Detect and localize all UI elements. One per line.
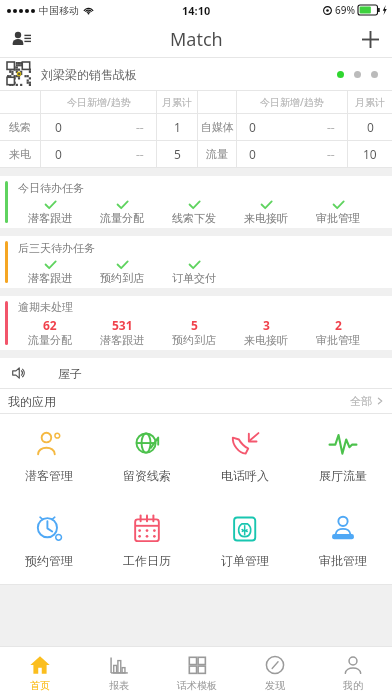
- staticText: 62: [43, 317, 57, 333]
- staticText: --: [136, 119, 144, 135]
- button[interactable]: 后三天待办任务: [0, 236, 392, 288]
- staticText: 0: [367, 119, 374, 135]
- staticText: 订单管理: [221, 553, 269, 568]
- button[interactable]: 流量分配: [86, 200, 158, 225]
- button[interactable]: 报表: [79, 647, 158, 696]
- staticText: 潜客跟进: [100, 333, 144, 347]
- staticText: 月累计: [355, 96, 385, 109]
- staticText: 工作日历: [123, 553, 171, 568]
- staticText: 刘梁梁的销售战板: [41, 67, 137, 82]
- staticText: 来电接听: [244, 211, 288, 225]
- staticText: --: [136, 146, 144, 162]
- staticText: 线索下发: [172, 211, 216, 225]
- staticText: 预约管理: [25, 553, 73, 568]
- staticText: 今日新增/趋势: [260, 95, 324, 109]
- staticText: 3: [263, 317, 270, 333]
- button[interactable]: 3: [230, 317, 302, 347]
- staticText: 全部: [350, 394, 372, 408]
- button[interactable]: 预约管理: [0, 499, 98, 584]
- staticText: 流量分配: [28, 333, 72, 347]
- button[interactable]: 2: [302, 317, 374, 347]
- staticText: 审批管理: [319, 553, 367, 568]
- staticText: 69%: [335, 3, 355, 17]
- staticText: 5: [191, 317, 198, 333]
- button[interactable]: 潜客跟进: [14, 260, 86, 285]
- staticText: 0: [249, 146, 256, 162]
- staticText: 来电接听: [244, 333, 288, 347]
- button[interactable]: Add: [348, 20, 392, 58]
- staticText: 预约到店: [172, 333, 216, 347]
- staticText: 后三天待办任务: [18, 241, 95, 255]
- button[interactable]: 潜客跟进: [14, 200, 86, 225]
- staticText: 我的: [343, 679, 363, 692]
- staticText: 预约到店: [100, 271, 144, 285]
- staticText: 潜客跟进: [28, 211, 72, 225]
- button[interactable]: 审批管理: [302, 200, 374, 225]
- button[interactable]: 潜客管理: [0, 414, 98, 499]
- staticText: 潜客跟进: [28, 271, 72, 285]
- button[interactable]: 审批管理: [294, 499, 392, 584]
- button[interactable]: 订单交付: [158, 260, 230, 285]
- staticText: 今日待办任务: [18, 181, 84, 195]
- staticText: 留资线索: [123, 468, 171, 483]
- button[interactable]: 屋子: [0, 358, 392, 388]
- button[interactable]: 工作日历: [98, 499, 196, 584]
- staticText: 流量分配: [100, 211, 144, 225]
- staticText: 发现: [265, 679, 285, 692]
- staticText: 首页: [30, 679, 50, 692]
- button[interactable]: 电话呼入: [196, 414, 294, 499]
- button[interactable]: 531: [86, 317, 158, 347]
- button[interactable]: 刘梁梁的销售战板: [0, 58, 392, 90]
- staticText: 话术模板: [177, 679, 217, 692]
- staticText: 屋子: [58, 366, 82, 381]
- button[interactable]: 留资线索: [98, 414, 196, 499]
- staticText: 我的应用: [8, 394, 56, 409]
- button[interactable]: 今日待办任务: [0, 176, 392, 228]
- button[interactable]: 62: [14, 317, 86, 347]
- staticText: 5: [174, 146, 181, 162]
- staticText: 14:10: [182, 3, 211, 18]
- staticText: 潜客管理: [25, 468, 73, 483]
- staticText: 1: [174, 119, 181, 135]
- button[interactable]: 发现: [236, 647, 314, 696]
- staticText: 0: [55, 146, 62, 162]
- staticText: 531: [112, 317, 133, 333]
- button[interactable]: 我的应用: [0, 388, 392, 414]
- staticText: 2: [335, 317, 342, 333]
- staticText: 今日新增/趋势: [67, 95, 131, 109]
- staticText: --: [327, 146, 335, 162]
- staticText: 审批管理: [316, 333, 360, 347]
- staticText: 自媒体: [201, 120, 234, 134]
- button[interactable]: 首页: [0, 647, 79, 696]
- button[interactable]: 逾期未处理: [0, 296, 392, 350]
- staticText: --: [327, 119, 335, 135]
- button[interactable]: 订单管理: [196, 499, 294, 584]
- staticText: 线索: [9, 120, 31, 134]
- staticText: 电话呼入: [221, 468, 269, 483]
- staticText: 月累计: [162, 96, 192, 109]
- button[interactable]: Contacts: [0, 20, 44, 58]
- staticText: 10: [363, 146, 377, 162]
- staticText: 订单交付: [172, 271, 216, 285]
- staticText: 流量: [206, 147, 228, 161]
- button[interactable]: 预约到店: [86, 260, 158, 285]
- staticText: 0: [249, 119, 256, 135]
- staticText: 展厅流量: [319, 468, 367, 483]
- button[interactable]: 话术模板: [158, 647, 236, 696]
- staticText: 报表: [109, 679, 129, 692]
- staticText: Match: [170, 27, 223, 52]
- staticText: 0: [55, 119, 62, 135]
- staticText: 审批管理: [316, 211, 360, 225]
- button[interactable]: 5: [158, 317, 230, 347]
- staticText: 逾期未处理: [18, 300, 73, 314]
- staticText: 中国移动: [39, 4, 79, 17]
- button[interactable]: 展厅流量: [294, 414, 392, 499]
- button[interactable]: 线索下发: [158, 200, 230, 225]
- staticText: 来电: [9, 147, 31, 161]
- button[interactable]: 来电接听: [230, 200, 302, 225]
- button[interactable]: 我的: [314, 647, 392, 696]
